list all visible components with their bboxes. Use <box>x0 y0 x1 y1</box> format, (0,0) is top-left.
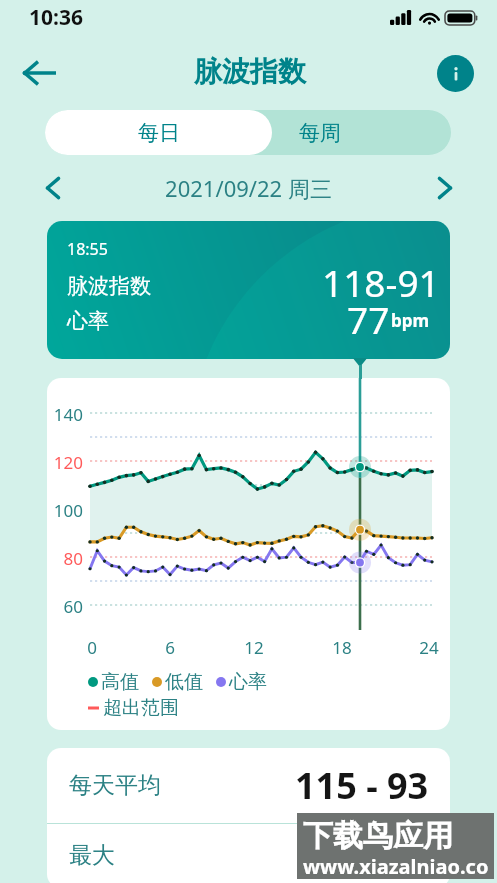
button[interactable]: Info <box>437 55 474 92</box>
staticText: 24 <box>409 636 449 659</box>
button[interactable]: 每天平均 <box>69 748 429 823</box>
button[interactable]: Back <box>15 49 63 97</box>
staticText: 60 <box>47 595 83 618</box>
staticText: 120 <box>47 451 83 474</box>
staticText: 18 <box>322 636 362 659</box>
staticText: bpm <box>391 309 430 332</box>
button[interactable]: 18:55 <box>47 221 450 359</box>
staticText: 77 <box>347 294 390 344</box>
button[interactable]: 每日 <box>45 110 272 155</box>
staticText: 6 <box>150 636 190 659</box>
staticText: 心率 <box>67 308 109 334</box>
staticText: 128 - 99 <box>295 831 429 880</box>
button[interactable]: 每周 <box>226 110 451 155</box>
staticText: 2021/09/22 周三 <box>0 173 497 203</box>
button[interactable]: Previous day <box>31 166 75 210</box>
button[interactable]: 最大 <box>69 824 429 883</box>
staticText: 脉波指数 <box>194 54 306 89</box>
staticText: 100 <box>47 499 83 522</box>
staticText: 每天平均 <box>69 771 161 800</box>
staticText: 脉波指数 <box>67 273 151 299</box>
staticText: 超出范围 <box>103 696 179 720</box>
staticText: 0 <box>72 636 112 659</box>
staticText: 每周 <box>299 120 341 146</box>
staticText: 每日 <box>138 120 180 146</box>
staticText: 心率 <box>229 670 267 694</box>
staticText: 115 - 93 <box>295 761 429 810</box>
staticText: 80 <box>47 547 83 570</box>
staticText: 140 <box>47 403 83 426</box>
staticText: 低值 <box>165 670 203 694</box>
staticText: 高值 <box>101 670 139 694</box>
staticText: 118-91 <box>322 257 440 307</box>
staticText: 12 <box>234 636 274 659</box>
staticText: 18:55 <box>67 238 108 260</box>
staticText: 10:36 <box>29 3 83 32</box>
staticText: 最大 <box>69 841 115 870</box>
staticText: 下载鸟应用 <box>303 817 453 855</box>
staticText: www.xiazalniao.com <box>303 853 497 883</box>
button[interactable]: Next day <box>423 166 467 210</box>
